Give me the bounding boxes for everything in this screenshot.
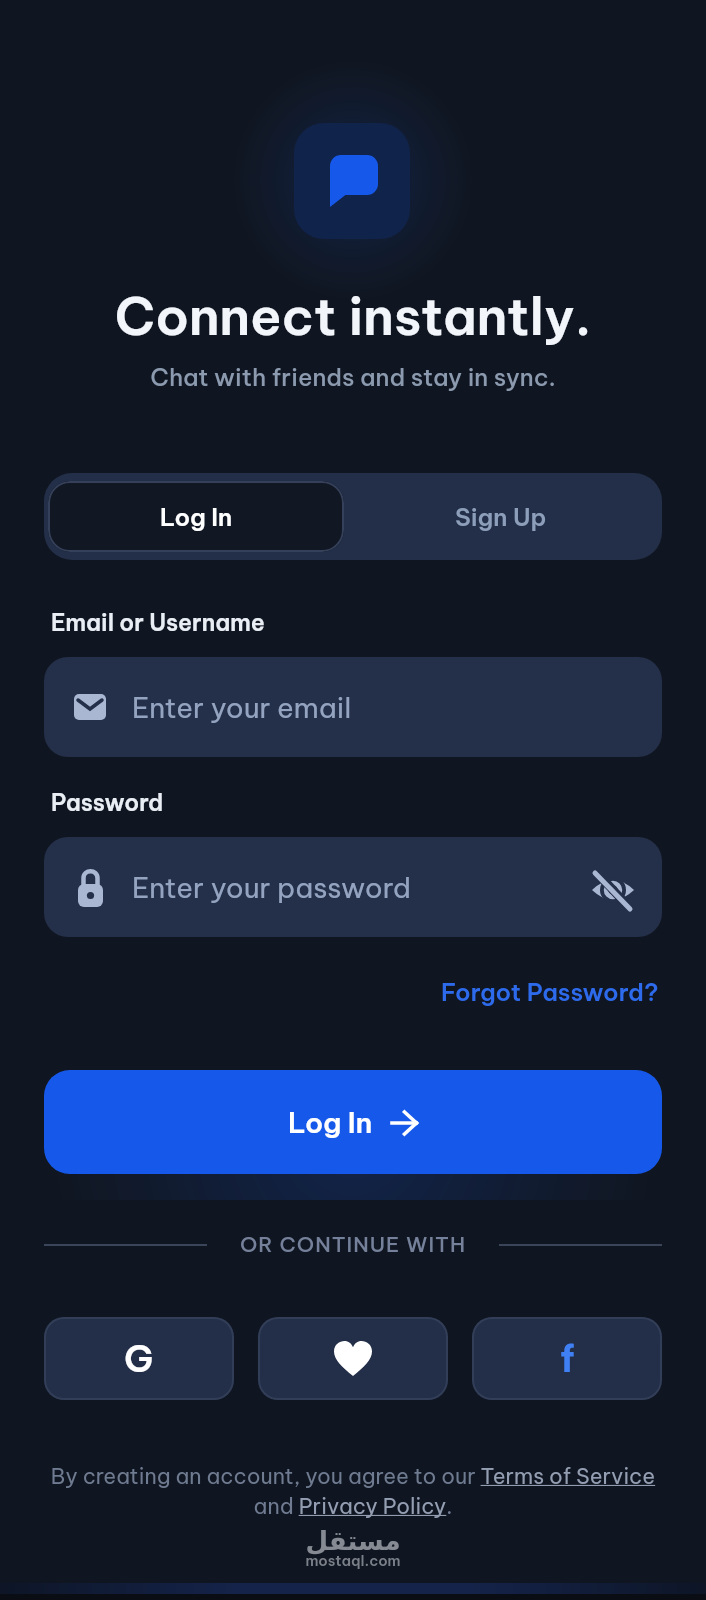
staticText: Chat with friends and stay in sync. [0,362,706,392]
button[interactable]: Log In [44,1070,662,1174]
staticText: Enter your email [132,690,352,725]
button[interactable]: Enter your password [44,837,662,937]
staticText: Email or Username [51,608,265,637]
staticText: Connect instantly. [0,283,706,349]
staticText: Password [51,788,164,817]
staticText: G [124,1335,154,1382]
button[interactable]: and Privacy Policy. [0,1492,706,1519]
button[interactable]: G [44,1317,234,1400]
staticText: OR CONTINUE WITH [0,1231,706,1258]
button[interactable]: f [472,1317,662,1400]
staticText: mostaql.com [0,1551,706,1569]
staticText: Sign Up [455,502,547,532]
staticText: Forgot Password? [441,977,659,1007]
staticText: Log In [288,1105,373,1140]
staticText: Enter your password [132,870,411,905]
button[interactable]: By creating an account, you agree to our… [0,1462,706,1489]
button[interactable]: Enter your email [44,657,662,757]
button[interactable]: Log In [48,481,344,552]
staticText: مستقل [0,1526,706,1556]
button[interactable] [258,1317,448,1400]
button[interactable] [585,859,641,915]
button[interactable]: Forgot Password? [441,977,659,1007]
staticText: f [560,1336,575,1382]
staticText: Log In [160,502,233,532]
button[interactable]: Sign Up [344,481,658,552]
